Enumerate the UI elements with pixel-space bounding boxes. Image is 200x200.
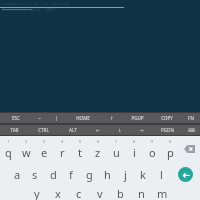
button[interactable]: 2 <box>17 136 35 162</box>
button[interactable]: ⌨ <box>182 125 200 135</box>
staticText: w <box>22 145 31 160</box>
staticText: → <box>140 128 144 133</box>
staticText: g <box>86 167 93 182</box>
staticText: PGDN <box>161 127 174 133</box>
staticText: ~ <box>38 115 41 121</box>
staticText: 7 <box>115 139 118 144</box>
staticText: l <box>160 167 163 182</box>
button[interactable]: TAB <box>0 125 29 135</box>
button[interactable]: b <box>110 186 131 200</box>
button[interactable]: 5 <box>71 136 89 162</box>
staticText: 1 <box>7 139 10 144</box>
button[interactable]: k <box>134 162 152 186</box>
staticText: b <box>117 186 124 200</box>
staticText: ESC <box>12 115 20 121</box>
staticText: n <box>138 186 145 200</box>
button[interactable]: Backspace <box>179 136 200 162</box>
button[interactable]: f <box>62 162 80 186</box>
staticText: 4 <box>61 139 64 144</box>
staticText: CTRL <box>38 127 49 133</box>
staticText: f <box>69 167 73 182</box>
button[interactable]: s <box>26 162 44 186</box>
button[interactable]: 8 <box>125 136 143 162</box>
button[interactable]: c <box>68 186 89 200</box>
button[interactable]: g <box>80 162 98 186</box>
button[interactable]: 0 <box>161 136 179 162</box>
staticText: FN <box>188 115 194 121</box>
button[interactable]: x <box>47 186 68 200</box>
button[interactable]: a <box>8 162 26 186</box>
staticText: i <box>133 145 136 160</box>
staticText: ← <box>96 128 100 133</box>
staticText: user@host:~$ ls -la /storage <box>2 1 70 6</box>
button[interactable]: l <box>152 162 170 186</box>
staticText: k <box>140 167 146 182</box>
button[interactable]: ← <box>87 125 109 135</box>
button[interactable]: h <box>98 162 116 186</box>
staticText: y <box>34 186 40 200</box>
staticText: 9 <box>151 139 154 144</box>
button[interactable]: 9 <box>143 136 161 162</box>
button[interactable]: 3 <box>35 136 53 162</box>
button[interactable]: → <box>131 125 153 135</box>
staticText: d <box>50 167 57 182</box>
staticText: 3 <box>43 139 46 144</box>
staticText: 5 <box>79 139 82 144</box>
button[interactable]: ESC <box>0 113 31 123</box>
staticText: a <box>14 167 21 182</box>
button[interactable]: y <box>26 186 47 200</box>
staticText: o <box>149 145 156 160</box>
staticText: x <box>55 186 61 200</box>
staticText: COPY <box>161 115 173 121</box>
button[interactable]: ~ <box>31 113 48 123</box>
staticText: q <box>5 145 12 160</box>
staticText: drwxr-xr-x data 4096 <box>2 7 55 12</box>
button[interactable]: ↑ <box>100 113 123 123</box>
button[interactable]: ALT <box>58 125 87 135</box>
button[interactable]: j <box>116 162 134 186</box>
button[interactable]: 1 <box>0 136 17 162</box>
button[interactable]: | <box>48 113 65 123</box>
staticText: p <box>167 145 174 160</box>
staticText: PGUP <box>131 115 144 121</box>
button[interactable]: HOME <box>65 113 100 123</box>
staticText: 2 <box>25 139 28 144</box>
staticText: ALT <box>69 127 77 133</box>
staticText: 6 <box>97 139 100 144</box>
button[interactable]: Enter <box>170 162 200 186</box>
button[interactable]: FN <box>181 113 200 123</box>
button[interactable]: m <box>152 186 173 200</box>
staticText: j <box>124 167 127 182</box>
staticText: e <box>41 145 48 160</box>
button[interactable]: COPY <box>152 113 181 123</box>
button[interactable]: d <box>44 162 62 186</box>
staticText: | <box>55 115 58 121</box>
button[interactable]: PGDN <box>153 125 182 135</box>
button[interactable]: 7 <box>107 136 125 162</box>
button[interactable]: 4 <box>53 136 71 162</box>
button[interactable]: n <box>131 186 152 200</box>
button[interactable]: CTRL <box>29 125 58 135</box>
staticText: s <box>32 167 38 182</box>
button[interactable]: PGUP <box>123 113 152 123</box>
staticText: ⌨ <box>188 128 195 133</box>
button[interactable]: 6 <box>89 136 107 162</box>
staticText: v <box>97 186 103 200</box>
staticText: c <box>76 186 82 200</box>
staticText: 0 <box>169 139 172 144</box>
staticText: u <box>113 145 120 160</box>
staticText: ↓ <box>118 128 122 133</box>
button[interactable]: v <box>89 186 110 200</box>
staticText: z <box>95 145 101 160</box>
staticText: TAB <box>10 127 19 133</box>
staticText: r <box>60 145 65 160</box>
staticText: HOME <box>76 115 90 121</box>
staticText: 8 <box>133 139 136 144</box>
staticText: h <box>104 167 111 182</box>
staticText: m <box>157 186 168 200</box>
staticText: t <box>78 145 82 160</box>
button[interactable]: ↓ <box>109 125 131 135</box>
staticText: ↑ <box>110 116 114 121</box>
